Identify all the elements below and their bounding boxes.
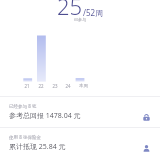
other: Coupon [141,143,151,153]
staticText: 参考总回报 1478.04 元 [9,111,81,121]
staticText: 使用 8 张保险金 [9,134,41,140]
staticText: /52周 [83,7,104,18]
staticText: 23 [52,83,58,89]
button[interactable]: 使用 8 张保险金 [0,127,160,154]
staticText: 已参与 [74,17,86,22]
staticText: 21 [24,83,30,89]
staticText: 25 [57,0,83,21]
staticText: 本周 [79,83,88,89]
staticText: 22 [38,83,44,89]
button[interactable]: 已经参与 8 笔 [0,96,160,123]
other: Details [141,112,151,122]
staticText: 24 [65,83,71,89]
staticText: 已经参与 8 笔 [9,103,37,109]
staticText: 累计抵现 25.84 元 [9,142,66,152]
